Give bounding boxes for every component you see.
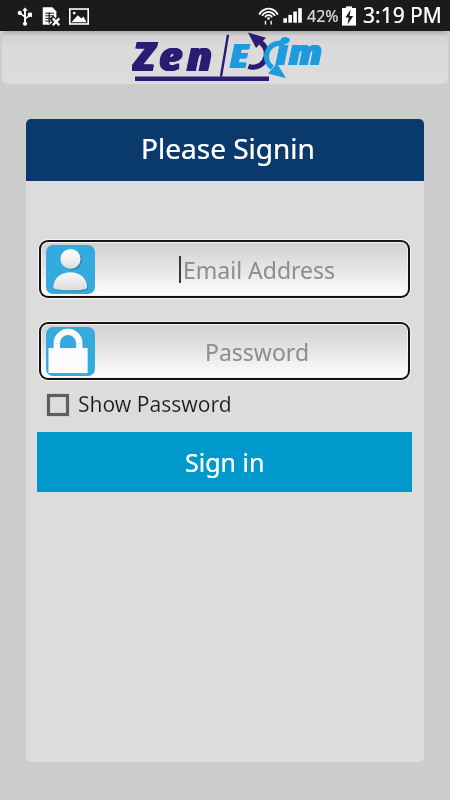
- staticText: im: [275, 31, 323, 76]
- staticText: E: [230, 33, 249, 78]
- staticText: im: [277, 31, 325, 76]
- staticText: Zen: [132, 31, 216, 80]
- staticText: E: [229, 33, 248, 78]
- staticText: Password: [205, 336, 310, 367]
- staticText: Zen: [134, 31, 218, 80]
- staticText: Zen: [133, 31, 217, 80]
- staticText: Email Address: [183, 254, 336, 285]
- button[interactable]: Show Password: [45, 388, 234, 421]
- staticText: Please Signin: [141, 129, 315, 167]
- staticText: Zen: [133, 31, 217, 80]
- staticText: E: [229, 33, 248, 78]
- staticText: E: [230, 33, 249, 78]
- staticText: im: [275, 31, 323, 76]
- button[interactable]: Sign in: [37, 432, 412, 492]
- staticText: E: [231, 33, 250, 78]
- staticText: Sign in: [185, 445, 265, 479]
- button[interactable]: Email Address: [42, 243, 407, 295]
- staticText: im: [276, 31, 324, 76]
- staticText: 42%: [307, 5, 339, 27]
- staticText: Show Password: [78, 390, 232, 419]
- button[interactable]: Password: [42, 325, 407, 377]
- staticText: im: [276, 31, 324, 76]
- staticText: 3:19 PM: [363, 1, 442, 30]
- staticText: Zen: [132, 31, 216, 80]
